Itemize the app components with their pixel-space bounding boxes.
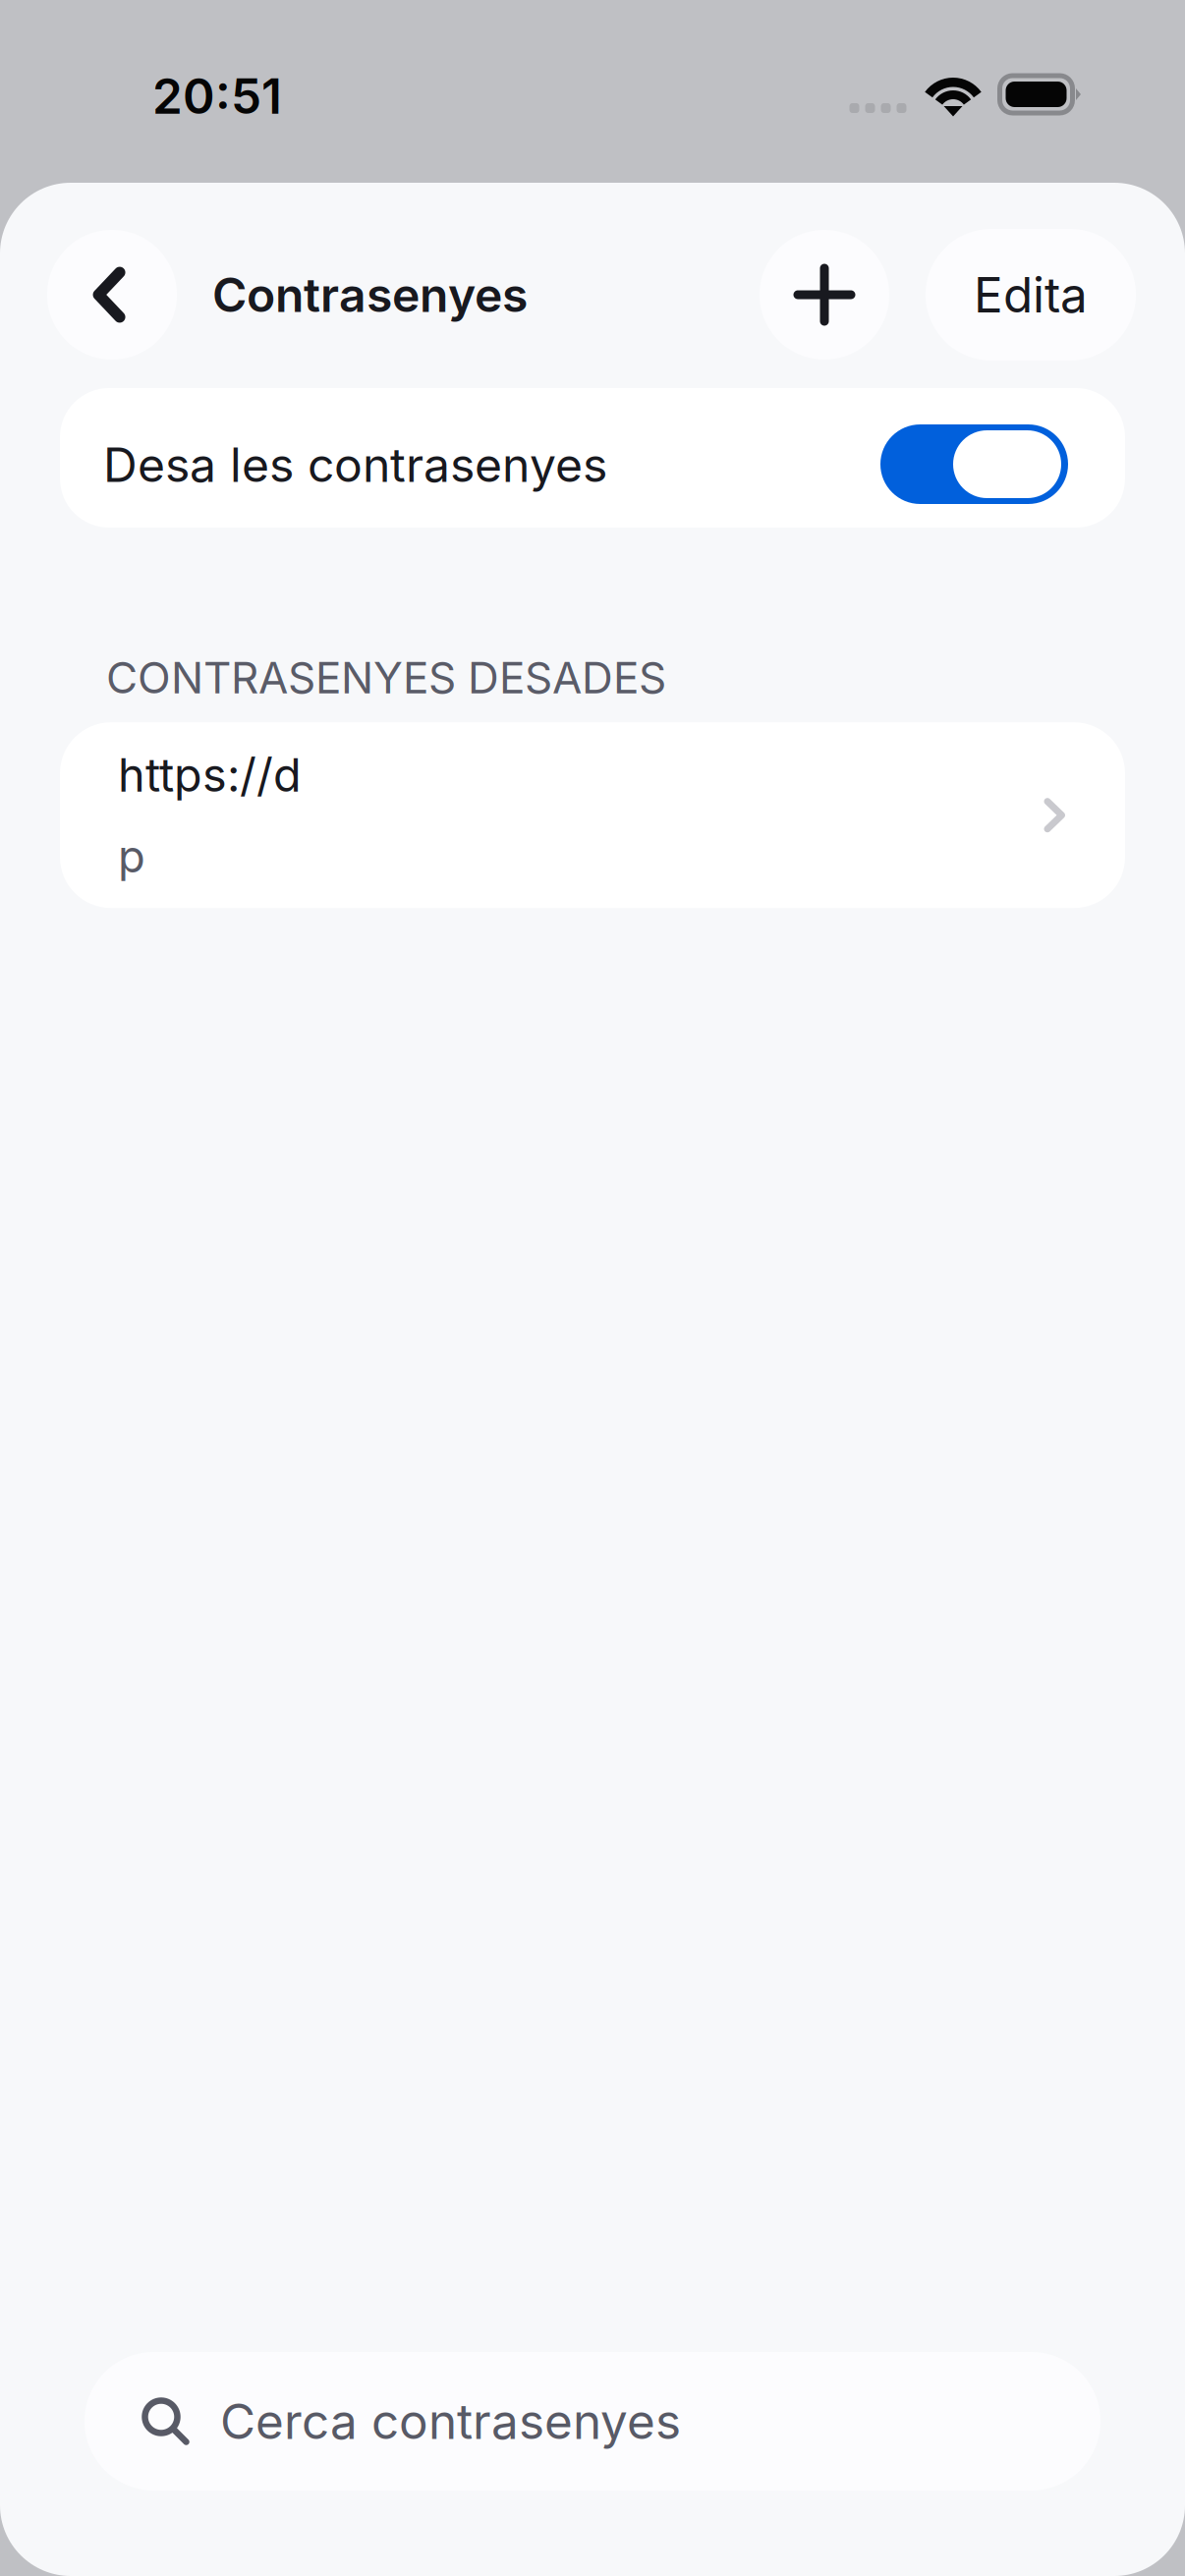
staticText: Contrasenyes <box>212 266 528 323</box>
staticText: https://d <box>118 747 302 803</box>
staticText: p <box>118 829 145 883</box>
button[interactable]: Desa les contrasenyes <box>60 388 1125 528</box>
button[interactable]: Afegeix <box>760 229 889 361</box>
staticText: CONTRASENYES DESADES <box>106 651 666 704</box>
staticText: Desa les contrasenyes <box>103 436 607 493</box>
button[interactable]: Edita <box>926 229 1136 361</box>
button[interactable]: Cerca contrasenyes <box>85 2352 1100 2491</box>
button[interactable]: https://d <box>60 722 1125 908</box>
staticText: 20:51 <box>152 67 282 125</box>
staticText: Cerca contrasenyes <box>220 2392 681 2451</box>
button[interactable]: Enrere <box>47 229 177 361</box>
staticText: Edita <box>974 265 1088 324</box>
